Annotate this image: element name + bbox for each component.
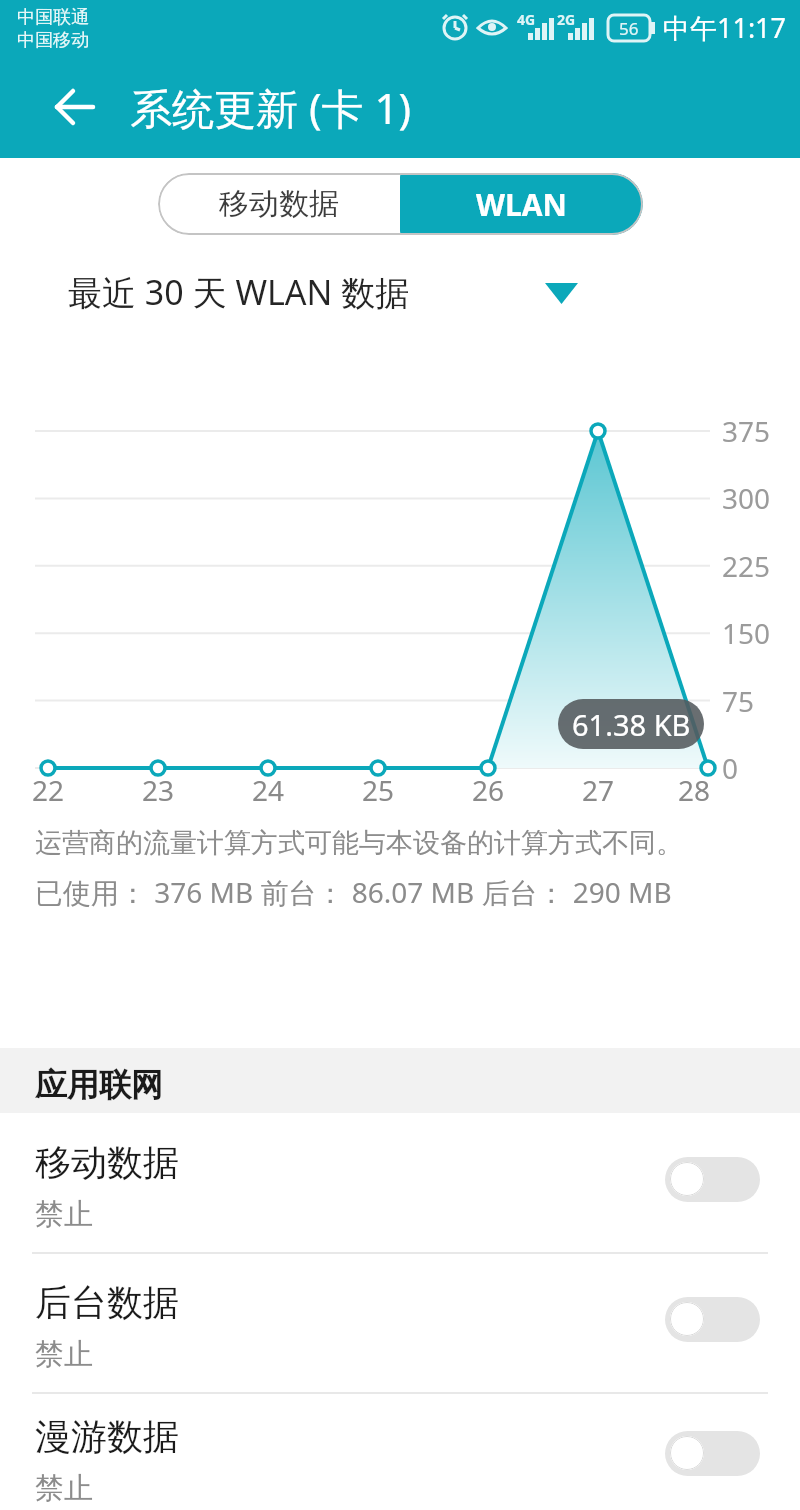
button[interactable]: 移动数据 — [158, 173, 400, 235]
staticText: 漫游数据 — [35, 1414, 179, 1459]
staticText: 移动数据 — [35, 1140, 179, 1185]
staticText: 中午11:17 — [663, 9, 787, 46]
button[interactable] — [0, 1253, 800, 1393]
button[interactable] — [0, 1387, 800, 1510]
staticText: 24 — [252, 771, 285, 809]
button[interactable] — [52, 84, 98, 130]
staticText: 禁止 — [35, 1336, 93, 1373]
button[interactable] — [665, 1431, 760, 1476]
staticText: 375 — [722, 412, 771, 450]
staticText: 25 — [362, 771, 395, 809]
staticText: 26 — [472, 771, 505, 809]
staticText: 75 — [722, 682, 755, 720]
staticText: 23 — [142, 771, 175, 809]
staticText: 系统更新 (卡 1) — [130, 79, 412, 136]
staticText: 4G — [517, 10, 536, 29]
staticText: 移动数据 — [219, 185, 339, 223]
staticText: 最近 30 天 WLAN 数据 — [68, 269, 410, 315]
button[interactable] — [665, 1157, 760, 1202]
button[interactable]: WLAN — [400, 173, 643, 235]
staticText: 28 — [678, 771, 711, 809]
staticText: 0 — [722, 749, 739, 787]
staticText: 56 — [619, 17, 639, 40]
button[interactable] — [40, 258, 600, 326]
staticText: 150 — [722, 614, 771, 652]
staticText: 禁止 — [35, 1196, 93, 1233]
staticText: 已使用： 376 MB 前台： 86.07 MB 后台： 290 MB — [35, 873, 672, 911]
staticText: 中国联通 — [17, 6, 89, 29]
button[interactable] — [0, 1113, 800, 1253]
button[interactable] — [665, 1297, 760, 1342]
staticText: 禁止 — [35, 1470, 93, 1507]
staticText: 应用联网 — [35, 1065, 163, 1105]
staticText: 后台数据 — [35, 1280, 179, 1325]
staticText: 运营商的流量计算方式可能与本设备的计算方式不同。 — [35, 826, 683, 860]
staticText: 300 — [722, 479, 771, 517]
staticText: 225 — [722, 547, 771, 585]
staticText: WLAN — [476, 184, 567, 225]
staticText: 27 — [582, 771, 615, 809]
staticText: 中国移动 — [17, 29, 89, 52]
staticText: 2G — [557, 10, 576, 29]
staticText: 61.38 KB — [572, 705, 691, 744]
staticText: 22 — [32, 771, 65, 809]
